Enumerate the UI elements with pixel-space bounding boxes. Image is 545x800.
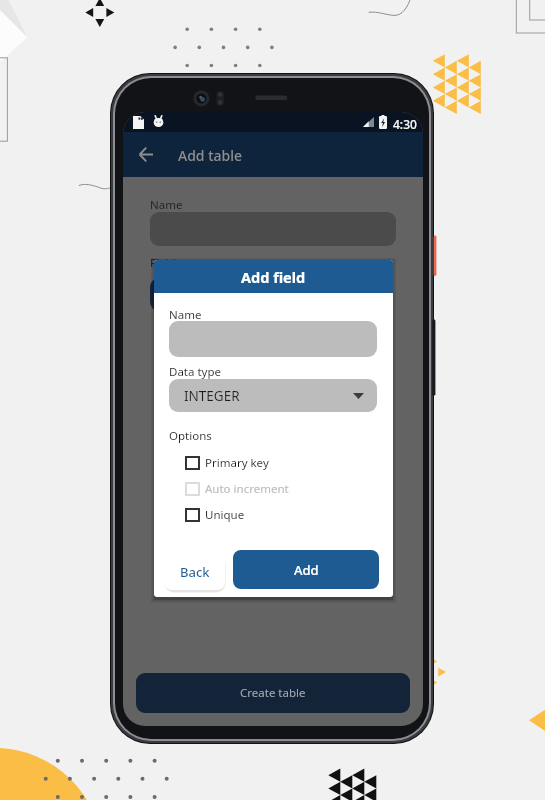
button[interactable]: Back	[129, 138, 161, 170]
button[interactable]: Create table	[136, 673, 410, 713]
staticText: Add field	[241, 267, 306, 287]
button[interactable]	[169, 321, 377, 357]
button[interactable]: Back	[164, 553, 225, 590]
staticText: 4:30	[393, 116, 417, 132]
button[interactable]: Primary key	[185, 452, 360, 473]
staticText: Name	[150, 197, 183, 213]
staticText: Add table	[178, 146, 243, 165]
button[interactable]	[150, 278, 228, 311]
staticText: Create table	[240, 685, 306, 701]
staticText: Add	[294, 561, 319, 579]
staticText: Primary key	[205, 455, 269, 471]
button[interactable]: INTEGER	[169, 379, 377, 412]
button[interactable]: Add	[233, 550, 379, 589]
button[interactable]: Auto increment	[185, 478, 360, 499]
staticText: Options	[169, 428, 212, 444]
staticText: Auto increment	[205, 481, 289, 497]
staticText: INTEGER	[184, 387, 240, 405]
staticText: Back	[180, 563, 210, 581]
staticText: Data type	[169, 364, 222, 380]
staticText: Fields	[150, 255, 181, 271]
button[interactable]: Unique	[185, 504, 360, 525]
staticText: Name	[169, 307, 202, 323]
staticText: Unique	[205, 507, 245, 523]
